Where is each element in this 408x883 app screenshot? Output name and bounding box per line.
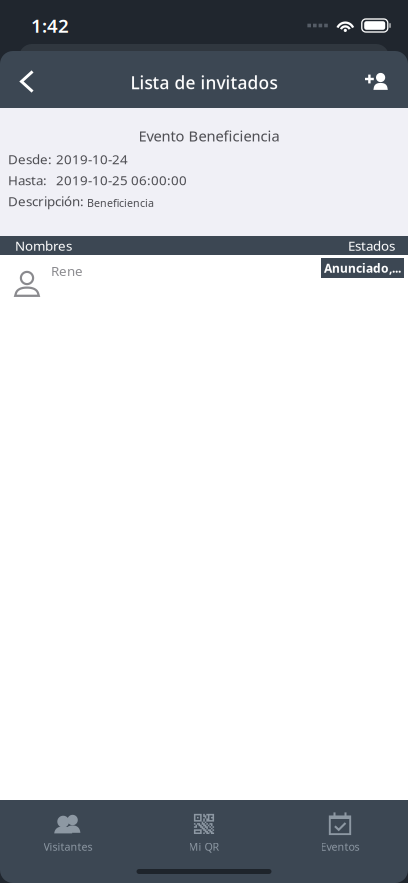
staticText: Evento Beneficiencia [138,126,279,145]
staticText: Estados [348,237,395,254]
staticText: Desde: [8,150,52,168]
staticText: Beneficiencia [87,196,154,210]
staticText: Hasta: [8,171,47,189]
button[interactable]: Visitantes [0,809,136,857]
staticText: Visitantes [43,839,92,854]
staticText: Lista de invitados [130,71,277,94]
staticText: Rene [51,262,83,280]
button[interactable]: Add guest [346,51,408,108]
staticText: 2019-10-25 06:00:00 [56,171,187,189]
button[interactable]: Mi QR [136,809,272,857]
staticText: Eventos [320,839,359,854]
button[interactable]: Back [0,51,62,108]
button[interactable]: Eventos [272,809,408,857]
staticText: Anunciado,... [324,260,401,276]
button[interactable]: Rene [0,255,408,307]
staticText: 2019-10-24 [56,150,128,168]
staticText: 1:42 [31,13,69,38]
staticText: Nombres [15,237,72,254]
staticText: Mi QR [188,839,219,854]
staticText: Descripción: [8,192,84,210]
